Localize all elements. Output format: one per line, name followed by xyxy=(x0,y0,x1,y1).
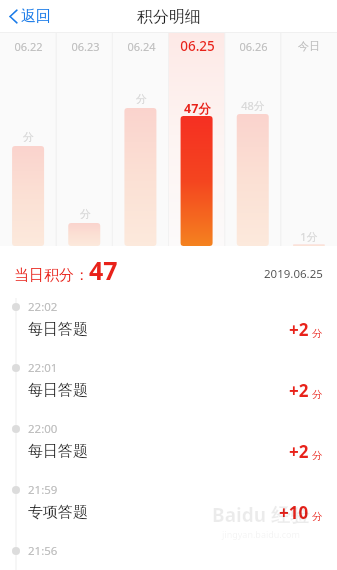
staticText: +2 xyxy=(289,379,309,402)
staticText: 21:59 xyxy=(28,482,58,498)
button[interactable]: 22:00 xyxy=(0,416,337,477)
staticText: 分 xyxy=(312,510,323,523)
staticText: 47 xyxy=(89,253,118,287)
staticText: 专项答题 xyxy=(28,503,88,522)
staticText: 分 xyxy=(312,388,323,401)
staticText: 47分 xyxy=(184,100,211,117)
staticText: 分 xyxy=(80,207,91,221)
staticText: +2 xyxy=(289,440,309,463)
staticText: 06.25 xyxy=(180,37,215,55)
staticText: 22:01 xyxy=(28,360,58,376)
staticText: 06.26 xyxy=(239,39,268,54)
button[interactable]: 21:56 xyxy=(0,538,337,570)
staticText: 分 xyxy=(312,449,323,462)
button[interactable]: 返回 xyxy=(0,3,61,30)
staticText: 48分 xyxy=(241,98,265,113)
button[interactable]: 21:59 xyxy=(0,477,337,538)
staticText: 分 xyxy=(23,130,34,144)
staticText: 06.23 xyxy=(71,39,100,54)
button[interactable]: 06.26 xyxy=(225,33,281,59)
button[interactable]: 06.22 xyxy=(0,33,57,59)
button[interactable]: 今日 xyxy=(281,33,337,59)
staticText: 22:02 xyxy=(28,299,58,315)
staticText: 每日答题 xyxy=(28,381,88,400)
button[interactable]: 22:02 xyxy=(0,294,337,355)
staticText: 积分明细 xyxy=(137,7,201,27)
staticText: 分 xyxy=(312,327,323,340)
button[interactable]: 06.25 xyxy=(169,33,225,59)
staticText: 分 xyxy=(136,92,147,106)
staticText: 22:00 xyxy=(28,421,58,437)
staticText: 06.22 xyxy=(14,39,43,54)
button[interactable]: 22:01 xyxy=(0,355,337,416)
staticText: 每日答题 xyxy=(28,442,88,461)
staticText: 当日积分： xyxy=(14,266,89,285)
staticText: 返回 xyxy=(21,7,51,26)
staticText: 21:56 xyxy=(28,543,58,559)
staticText: +2 xyxy=(289,318,309,341)
staticText: 1分 xyxy=(300,229,318,244)
staticText: 06.24 xyxy=(127,39,156,54)
button[interactable]: 06.23 xyxy=(57,33,113,59)
staticText: Baidu 经验 xyxy=(212,502,309,528)
button[interactable]: 06.24 xyxy=(113,33,169,59)
staticText: 2019.06.25 xyxy=(264,266,323,282)
staticText: 今日 xyxy=(298,39,320,53)
staticText: 每日答题 xyxy=(28,320,88,339)
staticText: +10 xyxy=(279,501,309,524)
